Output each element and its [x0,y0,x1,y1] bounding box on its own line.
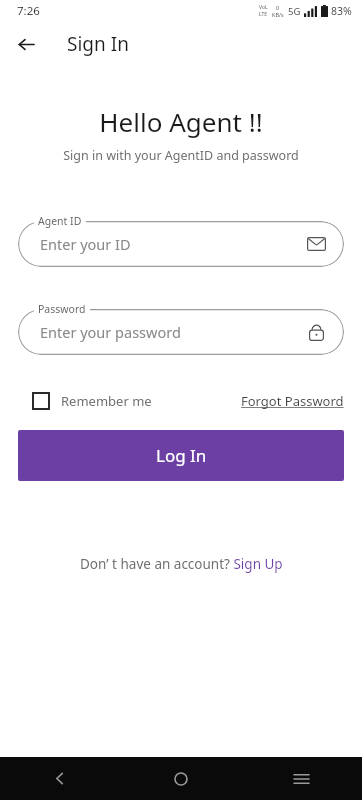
staticText: Log In [156,444,207,467]
staticText: LTE [259,11,268,18]
button[interactable]: Recent apps [241,757,362,800]
button[interactable]: Back [0,757,120,800]
staticText: Sign in with your AgentID and password [63,147,299,164]
button[interactable]: Remember me [18,392,152,410]
button[interactable]: Email [305,233,327,255]
staticText: Enter your password [40,322,181,342]
staticText: VoL [259,4,268,11]
staticText: 5G [288,5,301,18]
staticText: Password [38,302,86,316]
button[interactable]: Home [120,757,241,800]
button[interactable]: Back [9,27,43,61]
staticText: 7:26 [17,3,40,19]
staticText: Forgot Password [241,392,344,410]
button[interactable]: Forgot Password [241,392,344,410]
staticText: 0 [276,4,280,11]
button[interactable]: Password [305,321,327,343]
button[interactable]: Don’ t have an account? Sign Up [80,555,283,573]
staticText: Agent ID [38,214,82,228]
staticText: Hello Agent !! [99,104,263,139]
button[interactable]: Enter your ID [18,221,344,267]
staticText: Remember me [61,392,152,410]
staticText: Sign In [67,31,129,57]
staticText: Don’ t have an account? Sign Up [80,555,283,573]
staticText: Enter your ID [40,234,131,254]
button[interactable]: Log In [18,430,344,481]
staticText: 83% [331,4,352,18]
staticText: KB/s [272,11,284,18]
button[interactable]: Enter your password [18,309,344,355]
